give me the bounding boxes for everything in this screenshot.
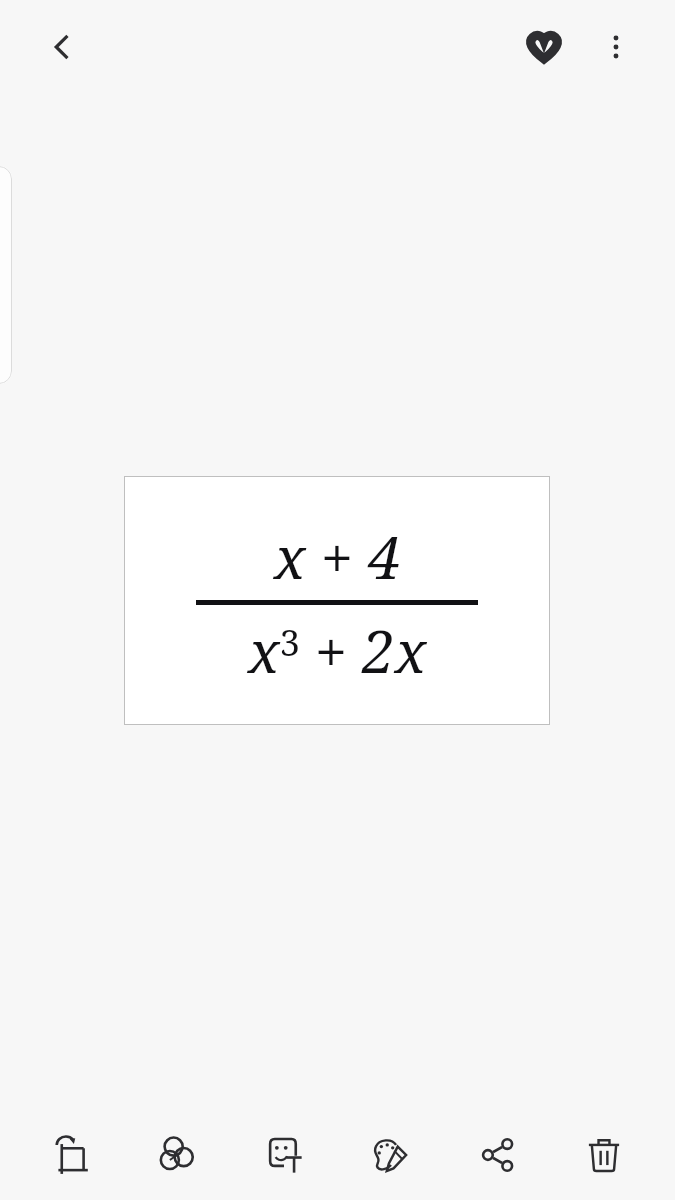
button[interactable]: Favorite: [512, 15, 576, 79]
button[interactable]: x + 4: [124, 476, 550, 725]
button[interactable]: More options: [584, 15, 648, 79]
button[interactable]: Draw: [355, 1119, 427, 1191]
button[interactable]: Back: [30, 15, 94, 79]
button[interactable]: Crop and rotate: [35, 1119, 107, 1191]
button[interactable]: Adjust: [141, 1119, 213, 1191]
staticText: x3 + 2x: [248, 611, 427, 690]
button[interactable]: Share: [462, 1119, 534, 1191]
button[interactable]: Stickers and text: [248, 1119, 320, 1191]
staticText: x + 4: [274, 517, 401, 596]
button[interactable]: Delete: [568, 1119, 640, 1191]
